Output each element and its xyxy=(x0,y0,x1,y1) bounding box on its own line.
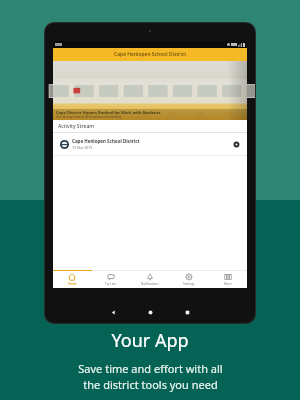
button[interactable]: Cape Henlopen School District xyxy=(57,135,243,153)
button[interactable]: Notifications xyxy=(130,271,169,288)
button[interactable]: Home xyxy=(53,271,91,288)
staticText: Cape Henlopen School District xyxy=(72,138,140,144)
staticText: Home xyxy=(68,282,77,286)
staticText: Cape Henlopen School District xyxy=(114,51,187,58)
button[interactable]: Tip Line xyxy=(91,271,130,288)
button[interactable]: Recent apps xyxy=(184,309,191,316)
staticText: One of only a few in DE to achieve this … xyxy=(56,115,122,119)
staticText: Notifications xyxy=(141,282,159,286)
staticText: Settings xyxy=(183,282,195,286)
button[interactable]: Back xyxy=(110,309,117,316)
button[interactable]: Share post xyxy=(233,141,240,148)
staticText: More xyxy=(224,282,232,286)
button[interactable]: Settings xyxy=(169,271,208,288)
button[interactable]: Home xyxy=(147,309,154,316)
staticText: Tip Line xyxy=(105,282,116,286)
staticText: Save time and effort with all the distri… xyxy=(78,361,223,392)
button[interactable]: More xyxy=(208,271,247,288)
staticText: Your App xyxy=(111,328,189,353)
staticText: 19 Nov 2019 xyxy=(72,145,93,150)
staticText: Activity Stream xyxy=(58,123,94,130)
staticText: Cape District Honors Ranked for Work wit… xyxy=(56,110,161,115)
